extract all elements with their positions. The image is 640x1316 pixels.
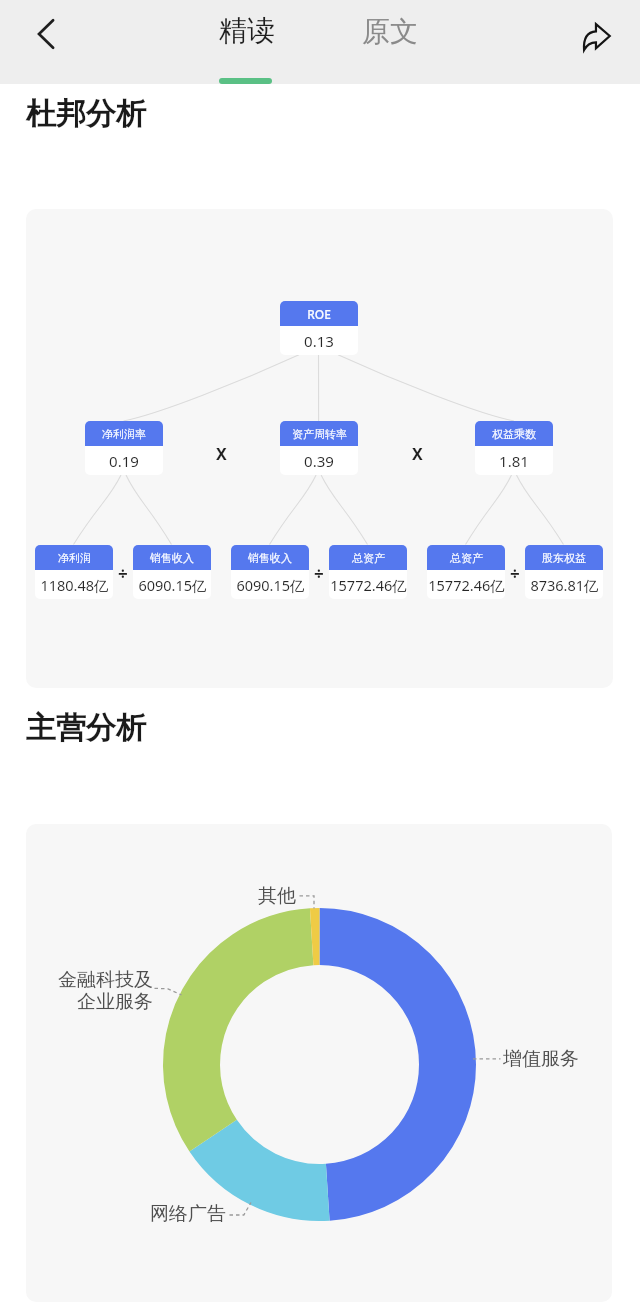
staticText: 15772.46亿 [428, 575, 505, 595]
button[interactable]: 总资产 [427, 545, 505, 599]
button[interactable]: 原文 [335, 4, 445, 74]
staticText: 6090.15亿 [236, 575, 305, 595]
staticText: 其他 [258, 884, 296, 908]
button[interactable]: 精读 [192, 4, 302, 84]
staticText: 销售收入 [150, 551, 194, 565]
staticText: 6090.15亿 [138, 575, 207, 595]
staticText: 企业服务 [58, 990, 153, 1014]
staticText: 15772.46亿 [330, 575, 407, 595]
staticText: 净利润率 [102, 427, 146, 441]
staticText: X [216, 443, 227, 465]
staticText: 0.13 [304, 331, 334, 351]
staticText: 权益乘数 [492, 427, 536, 441]
staticText: 增值服务 [503, 1047, 579, 1071]
staticText: 原文 [362, 14, 418, 49]
button[interactable]: 权益乘数 [475, 421, 553, 475]
staticText: 精读 [219, 13, 275, 48]
staticText: 资产周转率 [292, 427, 347, 441]
staticText: 0.19 [109, 451, 139, 471]
button[interactable]: ROE [280, 301, 358, 355]
staticText: 销售收入 [248, 551, 292, 565]
staticText: 网络广告 [150, 1202, 226, 1226]
button[interactable]: Share [570, 8, 622, 64]
button[interactable]: 净利润 [35, 545, 113, 599]
staticText: 股东权益 [542, 551, 586, 565]
button[interactable]: 股东权益 [525, 545, 603, 599]
staticText: ÷ [118, 562, 128, 585]
staticText: 金融科技及 [58, 968, 153, 992]
staticText: ÷ [314, 562, 324, 585]
staticText: 总资产 [450, 551, 483, 565]
button[interactable]: 销售收入 [133, 545, 211, 599]
staticText: 8736.81亿 [530, 575, 599, 595]
staticText: 总资产 [352, 551, 385, 565]
button[interactable]: Back [19, 6, 71, 62]
staticText: 净利润 [58, 551, 91, 565]
button[interactable]: 资产周转率 [280, 421, 358, 475]
staticText: 1.81 [499, 451, 529, 471]
button[interactable]: 总资产 [329, 545, 407, 599]
button[interactable]: 净利润率 [85, 421, 163, 475]
staticText: 0.39 [304, 451, 334, 471]
staticText: X [412, 443, 423, 465]
staticText: ÷ [510, 562, 520, 585]
staticText: 杜邦分析 [26, 95, 146, 133]
staticText: 主营分析 [26, 709, 146, 747]
staticText: 1180.48亿 [40, 575, 109, 595]
button[interactable]: 销售收入 [231, 545, 309, 599]
staticText: ROE [307, 306, 331, 322]
